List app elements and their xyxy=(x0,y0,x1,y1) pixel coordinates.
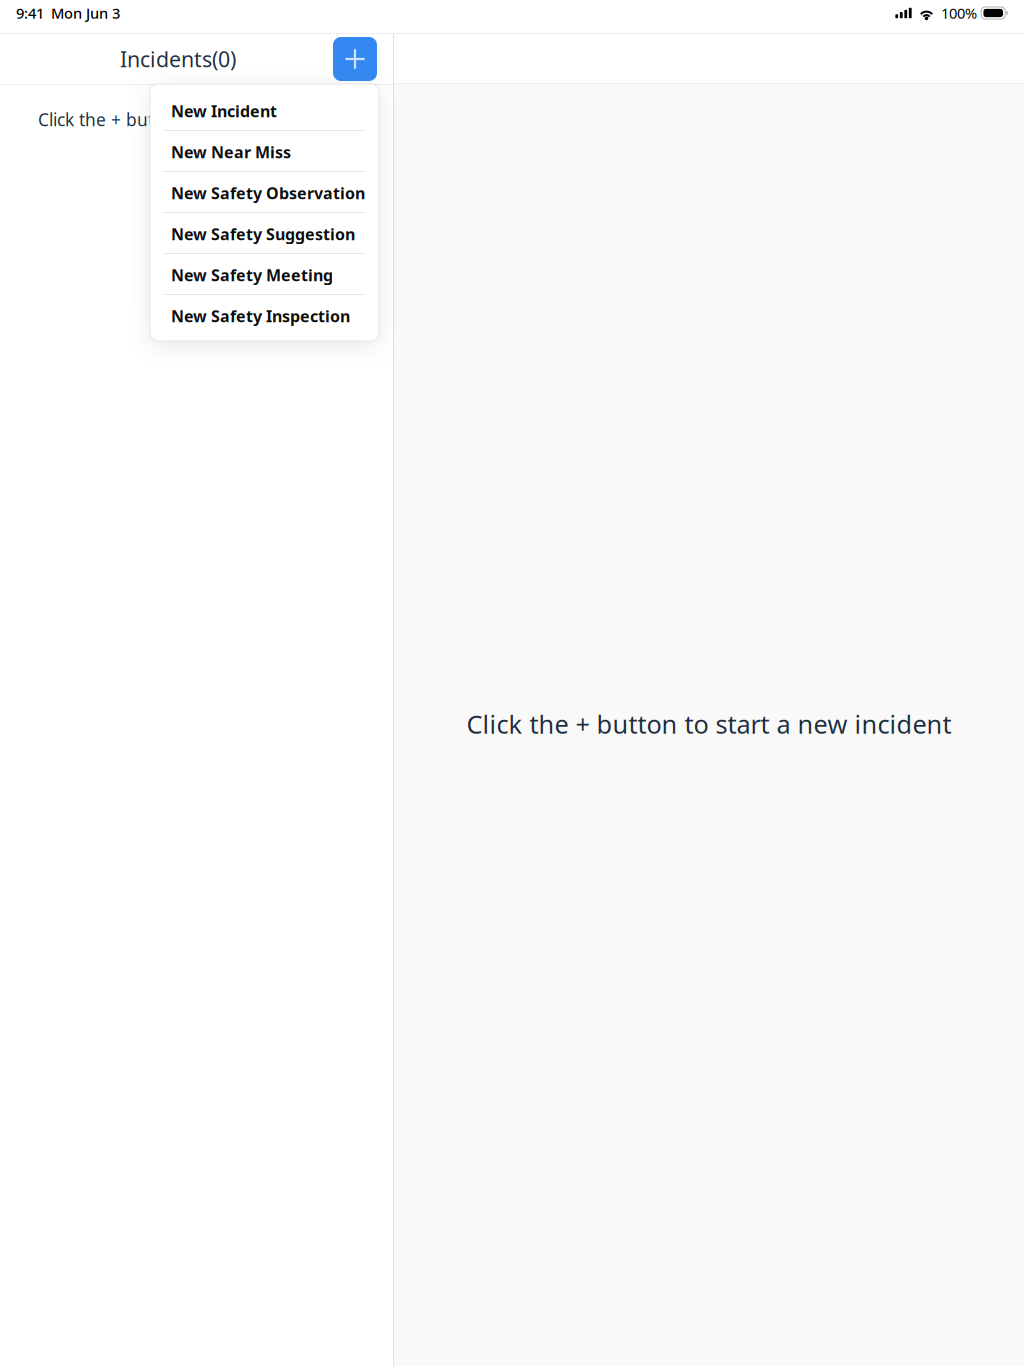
button[interactable]: New Safety Meeting xyxy=(150,254,379,295)
staticText: New Safety Suggestion xyxy=(171,223,355,245)
staticText: 100% xyxy=(941,3,977,23)
staticText: New Near Miss xyxy=(171,141,291,163)
button[interactable]: New Safety Inspection xyxy=(150,295,379,335)
staticText: Click the + button to start a new incide… xyxy=(466,707,951,741)
staticText: New Safety Meeting xyxy=(171,264,333,286)
button[interactable]: New Near Miss xyxy=(150,131,379,172)
button[interactable]: New Incident xyxy=(150,90,379,131)
staticText: Mon Jun 3 xyxy=(51,3,120,23)
staticText: New Safety Observation xyxy=(171,182,365,204)
button[interactable]: New xyxy=(333,37,377,81)
staticText: New Safety Inspection xyxy=(171,305,350,327)
button[interactable]: New Safety Observation xyxy=(150,172,379,213)
staticText: New Incident xyxy=(171,100,277,122)
button[interactable]: New Safety Suggestion xyxy=(150,213,379,254)
staticText: Incidents(0) xyxy=(120,45,236,73)
staticText: Click the + button to start a new incide… xyxy=(38,108,368,131)
staticText: 9:41 xyxy=(16,3,44,23)
